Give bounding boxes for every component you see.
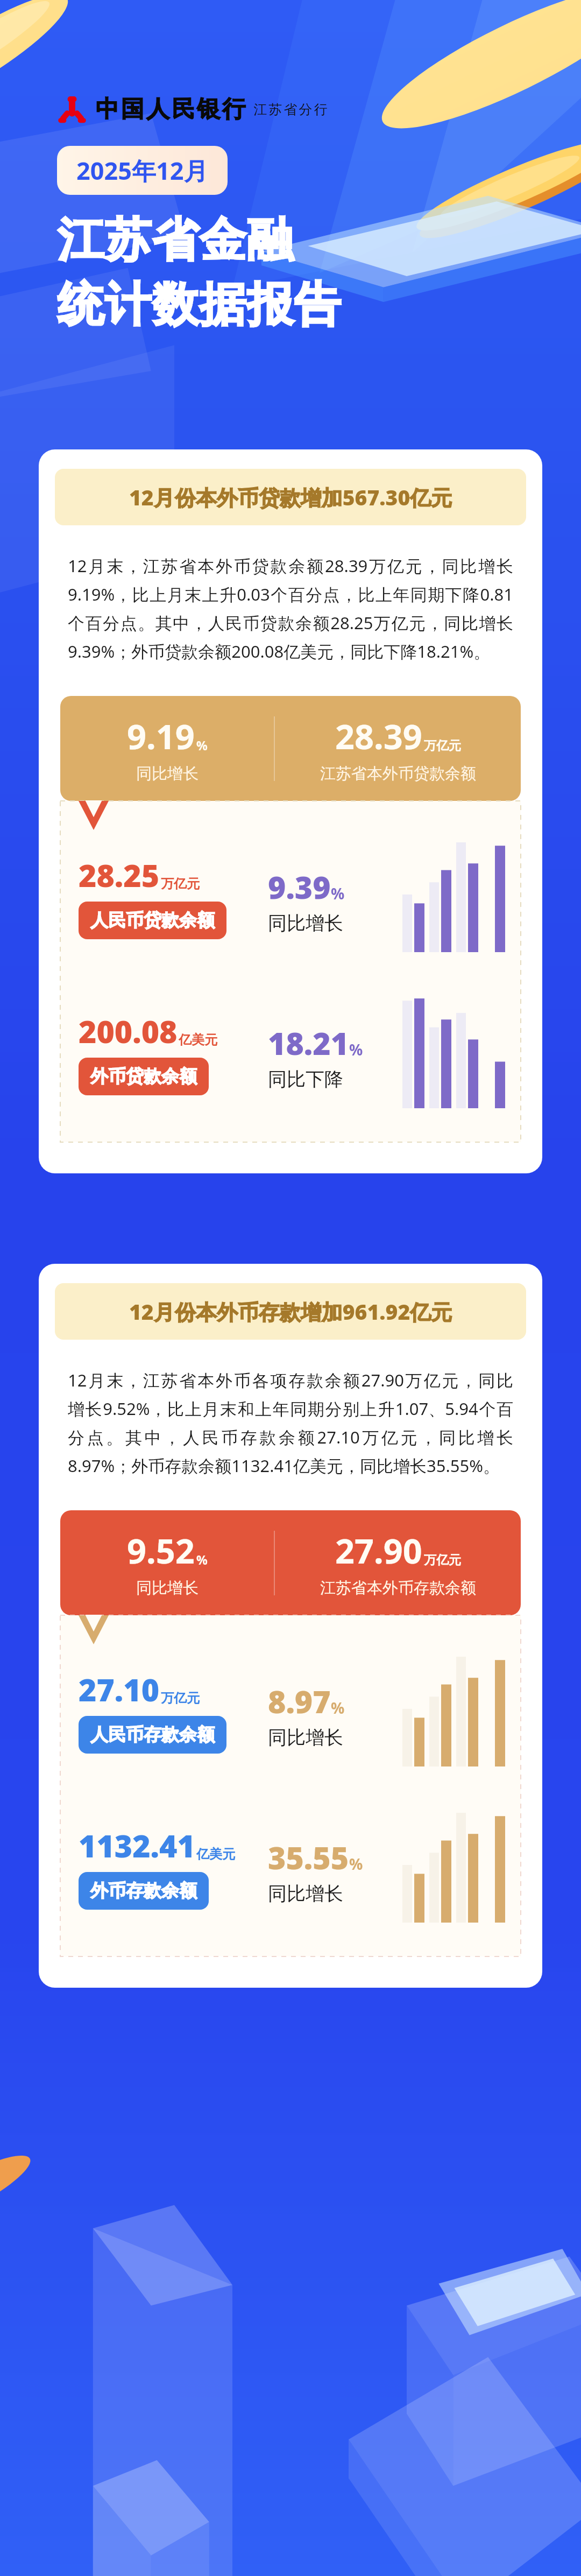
- button[interactable]: 12月份本外币存款增加961.92亿元: [55, 1283, 526, 1340]
- button[interactable]: 外币存款余额: [79, 1872, 209, 1910]
- staticText: 1132.41: [79, 1825, 195, 1867]
- staticText: 35.55: [268, 1836, 349, 1878]
- button[interactable]: 12月份本外币贷款增加567.30亿元: [55, 469, 526, 525]
- button[interactable]: 1132.41: [79, 1804, 509, 1931]
- staticText: 人民币存款余额: [90, 1723, 215, 1746]
- staticText: 统计数据报告: [57, 276, 341, 334]
- staticText: 27.10: [79, 1669, 160, 1711]
- staticText: 万亿元: [161, 876, 200, 892]
- staticText: 2025年12月: [76, 154, 208, 187]
- staticText: 亿美元: [179, 1032, 217, 1048]
- staticText: %: [196, 737, 208, 754]
- staticText: 18.21: [268, 1022, 349, 1064]
- staticText: 江苏省本外币存款余额: [320, 1578, 476, 1598]
- staticText: 万亿元: [424, 1552, 461, 1568]
- staticText: 28.39: [335, 713, 422, 759]
- staticText: 12月份本外币贷款增加567.30亿元: [129, 483, 452, 511]
- button[interactable]: 200.08: [79, 989, 509, 1116]
- staticText: %: [331, 1698, 345, 1718]
- button[interactable]: 28.25: [79, 833, 509, 960]
- staticText: 亿美元: [196, 1846, 235, 1862]
- button[interactable]: 外币贷款余额: [79, 1058, 209, 1095]
- button[interactable]: 人民币存款余额: [79, 1716, 226, 1754]
- staticText: %: [349, 1039, 363, 1060]
- button[interactable]: 9.19: [60, 696, 521, 801]
- button[interactable]: 人民币贷款余额: [79, 902, 226, 939]
- button[interactable]: 27.10: [79, 1648, 509, 1775]
- staticText: 同比增长: [268, 911, 343, 935]
- staticText: 中国人民银行: [95, 95, 246, 124]
- staticText: 12月末，江苏省本外币贷款余额28.39万亿元，同比增长9.19%，比上月末上升…: [68, 554, 513, 663]
- staticText: 万亿元: [424, 738, 461, 754]
- button[interactable]: 2025年12月: [57, 146, 228, 195]
- button[interactable]: 9.52: [60, 1510, 521, 1615]
- staticText: 同比下降: [268, 1067, 343, 1091]
- staticText: 12月末，江苏省本外币各项存款余额27.90万亿元，同比增长9.52%，比上月末…: [68, 1369, 513, 1477]
- staticText: 9.39: [268, 866, 331, 908]
- staticText: 江苏省本外币贷款余额: [320, 764, 476, 784]
- staticText: 江苏省金融: [57, 211, 294, 269]
- button[interactable]: 12月份本外币存款增加961.92亿元: [39, 1264, 542, 1988]
- staticText: 外币贷款余额: [90, 1065, 197, 1088]
- staticText: 外币存款余额: [90, 1880, 197, 1902]
- staticText: 人民币贷款余额: [90, 909, 215, 932]
- staticText: 27.90: [335, 1528, 422, 1574]
- staticText: 同比增长: [268, 1882, 343, 1905]
- other: 中国人民银行标志: [57, 94, 87, 124]
- staticText: 200.08: [79, 1010, 178, 1052]
- staticText: 同比增长: [268, 1726, 343, 1749]
- staticText: 江苏省分行: [253, 101, 328, 118]
- staticText: 12月份本外币存款增加961.92亿元: [129, 1297, 452, 1326]
- staticText: 28.25: [79, 854, 160, 896]
- staticText: 8.97: [268, 1680, 331, 1722]
- staticText: 万亿元: [161, 1690, 200, 1706]
- staticText: %: [331, 883, 345, 904]
- staticText: 同比增长: [136, 764, 199, 784]
- staticText: 9.19: [127, 713, 195, 759]
- staticText: 同比增长: [136, 1578, 199, 1598]
- staticText: %: [349, 1854, 363, 1874]
- button[interactable]: 12月份本外币贷款增加567.30亿元: [39, 449, 542, 1173]
- staticText: %: [196, 1551, 208, 1568]
- staticText: 9.52: [127, 1528, 195, 1574]
